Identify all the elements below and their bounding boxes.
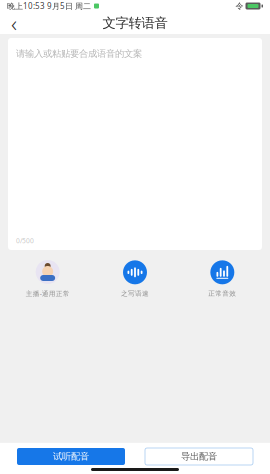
button[interactable]: 主播-通用正常 (4, 260, 91, 298)
button[interactable]: 请输入或粘贴要合成语音的文案 (8, 38, 262, 250)
staticText: 导出配音 (181, 451, 217, 462)
button[interactable]: 正常音效 (179, 260, 266, 297)
staticText: 晚上10:53 9月5日 周二 (7, 1, 91, 11)
button[interactable]: 试听配音 (17, 448, 125, 465)
staticText: 请输入或粘贴要合成语音的文案 (16, 48, 142, 59)
staticText: 令 (235, 1, 243, 11)
button[interactable]: 导出配音 (145, 448, 253, 465)
button[interactable]: Back (0, 12, 28, 34)
staticText: 文字转语音 (102, 15, 167, 31)
staticText: 正常音效 (208, 289, 236, 297)
staticText: 0/500 (16, 236, 34, 245)
staticText: 之写语速 (121, 289, 149, 297)
staticText: 主播-通用正常 (26, 289, 70, 298)
staticText: 试听配音 (53, 451, 89, 462)
button[interactable]: 之写语速 (91, 260, 179, 297)
staticText: ‹ (11, 8, 17, 38)
